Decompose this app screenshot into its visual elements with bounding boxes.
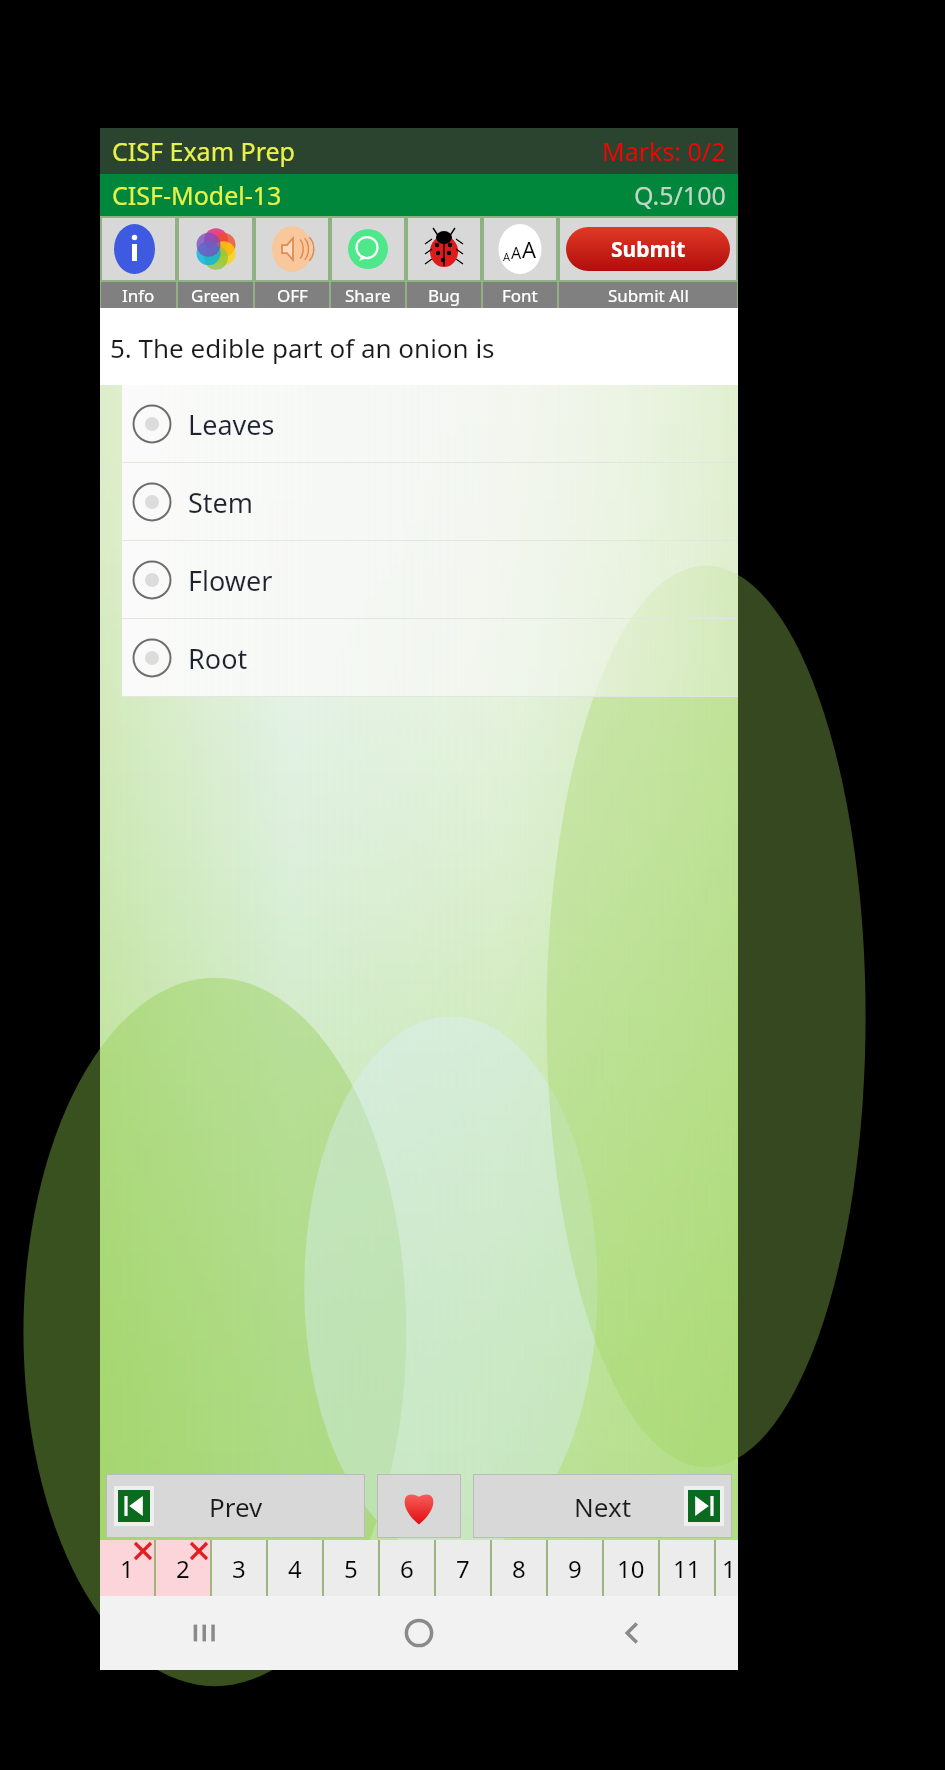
staticText: Next bbox=[574, 1489, 632, 1524]
staticText: Submit All bbox=[608, 284, 689, 307]
staticText: CISF-Model-13 bbox=[112, 178, 282, 212]
button[interactable]: Info bbox=[102, 218, 175, 280]
button[interactable]: Submit All bbox=[559, 282, 737, 308]
staticText: 4 bbox=[288, 1552, 302, 1585]
staticText: 10 bbox=[617, 1552, 645, 1585]
staticText: OFF bbox=[277, 284, 308, 307]
button[interactable]: 1 bbox=[100, 1540, 154, 1596]
button[interactable]: OFF bbox=[255, 282, 329, 308]
button[interactable]: Share bbox=[332, 218, 404, 280]
button[interactable]: Bug bbox=[407, 282, 481, 308]
staticText: A bbox=[522, 234, 537, 264]
staticText: Q.5/100 bbox=[634, 178, 726, 212]
staticText: 1 bbox=[722, 1552, 736, 1585]
button[interactable]: 8 bbox=[492, 1540, 546, 1596]
button[interactable]: Submit bbox=[560, 218, 736, 280]
staticText: 1 bbox=[120, 1552, 134, 1585]
button[interactable]: Font bbox=[483, 282, 557, 308]
button[interactable]: 3 bbox=[212, 1540, 266, 1596]
button[interactable]: Green bbox=[178, 282, 253, 308]
button[interactable]: 1 bbox=[716, 1540, 738, 1596]
button[interactable]: Info bbox=[101, 282, 176, 308]
staticText: A bbox=[511, 242, 522, 264]
button[interactable]: 9 bbox=[548, 1540, 602, 1596]
staticText: 7 bbox=[456, 1552, 470, 1585]
staticText: 5. The edible part of an onion is bbox=[110, 330, 495, 365]
staticText: 5 bbox=[344, 1552, 358, 1585]
staticText: 11 bbox=[673, 1552, 701, 1585]
staticText: Stem bbox=[188, 484, 254, 521]
button[interactable]: 11 bbox=[660, 1540, 714, 1596]
staticText: Info bbox=[122, 284, 155, 307]
button[interactable]: Green bbox=[179, 218, 252, 280]
button[interactable]: Recents bbox=[100, 1596, 312, 1670]
button[interactable]: Stem bbox=[122, 463, 738, 541]
staticText: CISF Exam Prep bbox=[112, 134, 295, 168]
button[interactable]: 2 bbox=[156, 1540, 210, 1596]
staticText: Leaves bbox=[188, 406, 275, 443]
staticText: 6 bbox=[400, 1552, 414, 1585]
staticText: 9 bbox=[568, 1552, 582, 1585]
staticText: Submit bbox=[611, 235, 686, 264]
button[interactable]: Prev bbox=[106, 1474, 365, 1538]
staticText: Bug bbox=[428, 284, 461, 307]
staticText: Prev bbox=[209, 1489, 263, 1524]
button[interactable]: Home bbox=[312, 1596, 525, 1670]
staticText: Flower bbox=[188, 562, 273, 599]
staticText: 8 bbox=[512, 1552, 526, 1585]
staticText: Root bbox=[188, 640, 248, 677]
button[interactable]: 4 bbox=[268, 1540, 322, 1596]
button[interactable]: Bug bbox=[408, 218, 480, 280]
button[interactable]: 10 bbox=[604, 1540, 658, 1596]
button[interactable]: Root bbox=[122, 619, 738, 697]
button[interactable]: OFF bbox=[256, 218, 328, 280]
button[interactable]: Share bbox=[331, 282, 405, 308]
button[interactable]: Next bbox=[473, 1474, 732, 1538]
staticText: Font bbox=[502, 284, 538, 307]
button[interactable]: 6 bbox=[380, 1540, 434, 1596]
button[interactable]: Back bbox=[525, 1596, 738, 1670]
button[interactable]: 7 bbox=[436, 1540, 490, 1596]
button[interactable]: Flower bbox=[122, 541, 738, 619]
button[interactable]: Font bbox=[484, 218, 556, 280]
button[interactable]: 5 bbox=[324, 1540, 378, 1596]
staticText: 2 bbox=[176, 1552, 190, 1585]
button[interactable]: Leaves bbox=[122, 385, 738, 463]
button[interactable]: Favourite bbox=[377, 1474, 461, 1538]
staticText: Green bbox=[191, 284, 240, 307]
staticText: 3 bbox=[232, 1552, 246, 1585]
staticText: Marks: 0/2 bbox=[602, 134, 726, 168]
staticText: A bbox=[503, 249, 511, 264]
staticText: Share bbox=[345, 284, 391, 307]
